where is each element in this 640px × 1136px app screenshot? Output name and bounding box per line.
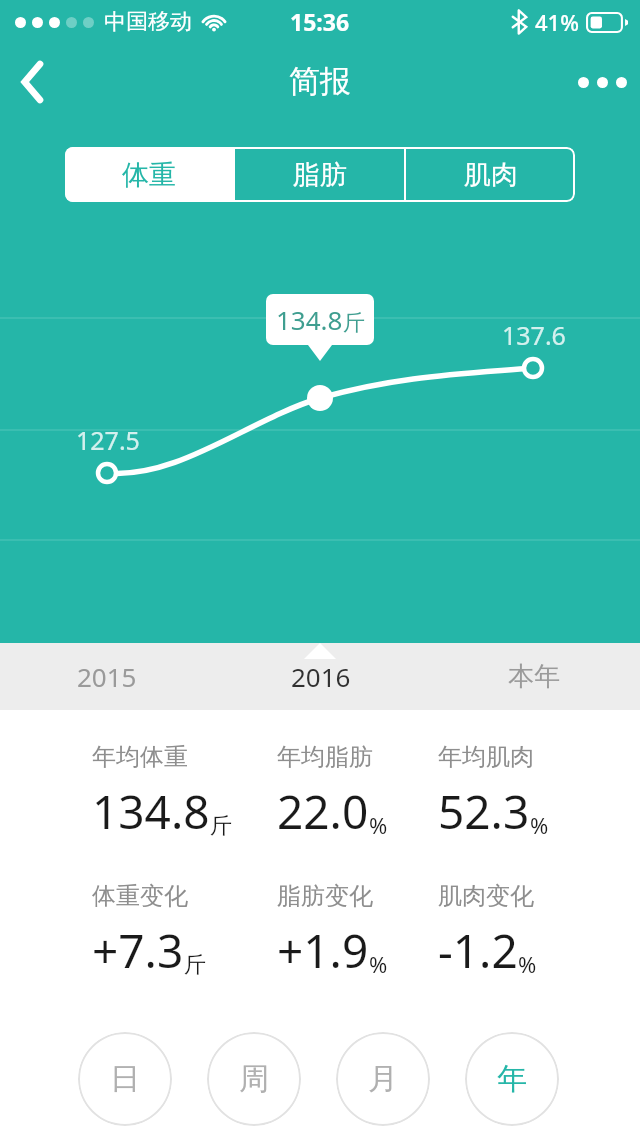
- staticText: 斤: [184, 951, 206, 979]
- button[interactable]: 本年: [427, 643, 640, 710]
- staticText: 月: [368, 1060, 398, 1098]
- staticText: 年均脂肪: [277, 742, 373, 772]
- staticText: 简报: [289, 62, 351, 101]
- staticText: 134.8: [92, 780, 210, 843]
- staticText: 肌肉变化: [438, 881, 534, 911]
- button[interactable]: 肌肉: [406, 147, 575, 202]
- staticText: 脂肪: [293, 158, 347, 192]
- staticText: 日: [110, 1060, 140, 1098]
- staticText: %: [369, 949, 388, 979]
- button[interactable]: 周: [207, 1032, 301, 1126]
- staticText: 年: [497, 1060, 527, 1098]
- staticText: 体重: [122, 158, 176, 192]
- staticText: 中国移动: [104, 8, 192, 36]
- button[interactable]: 脂肪: [235, 147, 404, 202]
- staticText: 22.0: [277, 780, 369, 843]
- staticText: 52.3: [438, 780, 530, 843]
- button[interactable]: 2016: [214, 643, 427, 710]
- staticText: +7.3: [92, 919, 184, 982]
- button[interactable]: 日: [78, 1032, 172, 1126]
- staticText: 137.6: [502, 318, 566, 352]
- staticText: 周: [239, 1060, 269, 1098]
- button[interactable]: 月: [336, 1032, 430, 1126]
- staticText: +1.9: [277, 919, 369, 982]
- staticText: 本年: [508, 660, 560, 693]
- button[interactable]: 体重: [65, 147, 233, 202]
- staticText: 年均体重: [92, 742, 188, 772]
- staticText: -1.2: [438, 919, 518, 982]
- button[interactable]: 2015: [0, 643, 214, 710]
- staticText: 年均肌肉: [438, 742, 534, 772]
- staticText: %: [369, 810, 388, 840]
- staticText: 2015: [77, 659, 137, 694]
- staticText: 斤: [343, 309, 365, 337]
- staticText: %: [530, 810, 549, 840]
- staticText: 斤: [210, 812, 232, 840]
- button[interactable]: More options: [564, 49, 640, 115]
- button[interactable]: 年: [465, 1032, 559, 1126]
- button[interactable]: Back: [0, 49, 66, 115]
- staticText: 127.5: [76, 423, 140, 457]
- staticText: 脂肪变化: [277, 881, 373, 911]
- staticText: 134.8: [276, 302, 343, 337]
- staticText: 41%: [535, 7, 579, 37]
- staticText: 体重变化: [92, 881, 188, 911]
- staticText: 15:36: [290, 6, 350, 37]
- staticText: 肌肉: [464, 158, 518, 192]
- staticText: %: [518, 949, 537, 979]
- staticText: 2016: [291, 659, 351, 694]
